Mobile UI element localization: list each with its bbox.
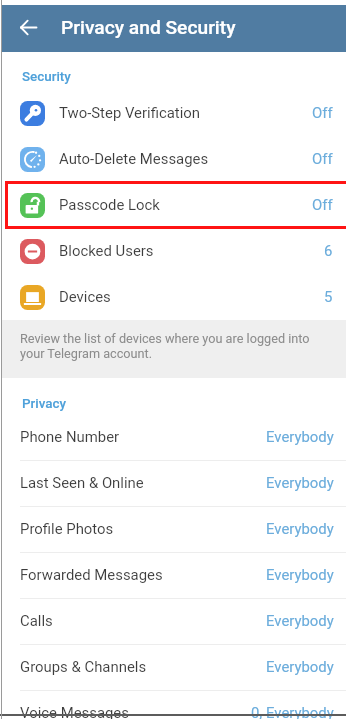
staticText: Off (312, 196, 333, 213)
button[interactable]: Auto-Delete Messages (2, 136, 346, 182)
button[interactable]: Groups & Channels (2, 645, 346, 691)
staticText: Blocked Users (59, 242, 154, 259)
staticText: 5 (324, 288, 333, 305)
staticText: Privacy (22, 396, 67, 412)
staticText: Everybody (266, 658, 334, 675)
staticText: Everybody (266, 520, 334, 537)
staticText: Profile Photos (20, 520, 114, 537)
staticText: Phone Number (20, 428, 120, 445)
staticText: Everybody (266, 474, 334, 491)
button[interactable]: Voice Messages (2, 691, 346, 719)
staticText: Two-Step Verification (59, 104, 201, 121)
button[interactable]: Forwarded Messages (2, 553, 346, 599)
staticText: Everybody (266, 612, 334, 629)
staticText: Off (312, 104, 333, 121)
staticText: 0, Everybody (251, 704, 334, 719)
staticText: Groups & Channels (20, 658, 147, 675)
staticText: Voice Messages (20, 704, 129, 719)
staticText: Last Seen & Online (20, 474, 144, 491)
staticText: Everybody (266, 428, 334, 445)
staticText: Passcode Lock (59, 196, 160, 213)
staticText: Everybody (266, 566, 334, 583)
button[interactable]: Phone Number (2, 415, 346, 461)
staticText: Calls (20, 612, 53, 629)
button[interactable]: Blocked Users (2, 228, 346, 274)
staticText: Auto-Delete Messages (59, 150, 209, 167)
button[interactable]: Devices (2, 274, 346, 320)
button[interactable]: Calls (2, 599, 346, 645)
staticText: Privacy and Security (61, 16, 236, 39)
staticText: Devices (59, 288, 111, 305)
button[interactable]: Last Seen & Online (2, 461, 346, 507)
staticText: Review the list of devices where you are… (20, 331, 310, 361)
button[interactable]: Two-Step Verification (2, 90, 346, 136)
staticText: Forwarded Messages (20, 566, 163, 583)
button[interactable]: Profile Photos (2, 507, 346, 553)
staticText: 6 (324, 242, 333, 259)
button[interactable]: Back (11, 10, 45, 44)
staticText: Security (22, 69, 71, 85)
staticText: Off (312, 150, 333, 167)
button[interactable]: Passcode Lock (2, 182, 346, 228)
